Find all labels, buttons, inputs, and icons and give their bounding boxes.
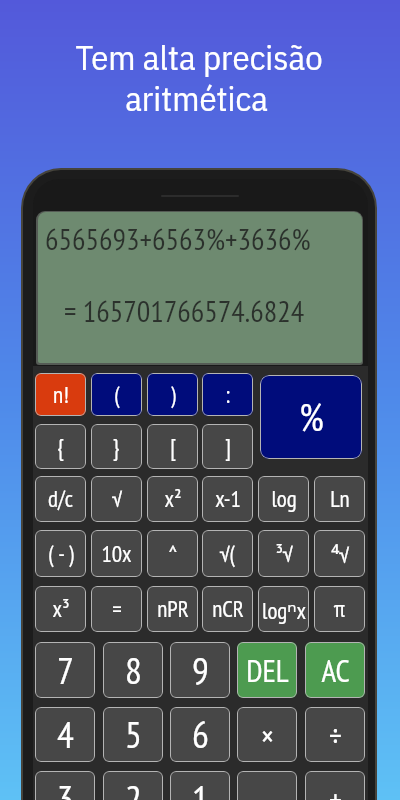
button[interactable]: x-1 (202, 476, 253, 522)
button[interactable]: 7 (35, 642, 95, 698)
staticText: × (261, 715, 274, 755)
button[interactable]: π (314, 586, 365, 632)
button[interactable]: } (91, 424, 142, 469)
staticText: { (57, 432, 64, 462)
button[interactable]: 1 (170, 771, 230, 800)
staticText: 4 (57, 710, 74, 759)
staticText: AC (321, 650, 350, 690)
staticText: logⁿx (262, 594, 306, 625)
button[interactable]: ³√ (258, 530, 309, 577)
button[interactable]: logⁿx (258, 586, 309, 632)
staticText: 9 (192, 646, 209, 695)
staticText: x³ (52, 594, 70, 624)
staticText: ) (170, 380, 176, 410)
button[interactable]: = (91, 586, 142, 632)
button[interactable]: 6 (170, 707, 230, 762)
button[interactable]: 5 (103, 707, 163, 762)
button[interactable]: 4 (35, 707, 95, 762)
staticText: % (299, 392, 324, 442)
staticText: ⁴√ (331, 538, 349, 569)
button[interactable]: nCR (202, 586, 253, 632)
staticText: 1 (192, 774, 209, 800)
staticText: ] (225, 432, 231, 462)
staticText: 5 (125, 710, 142, 759)
staticText: ÷ (329, 715, 342, 755)
button[interactable]: AC (305, 642, 365, 698)
button[interactable]: nPR (147, 586, 198, 632)
button[interactable]: Ln (314, 476, 365, 522)
staticText: ( - ) (48, 539, 74, 569)
staticText: = (112, 594, 122, 624)
button[interactable]: ^ (147, 530, 198, 577)
button[interactable]: 3 (35, 771, 95, 800)
staticText: log (271, 484, 297, 514)
button[interactable]: [ (147, 424, 198, 469)
staticText: x² (164, 484, 182, 514)
button[interactable]: × (237, 707, 297, 762)
button[interactable]: + (305, 771, 365, 800)
button[interactable]: x³ (35, 586, 86, 632)
button[interactable]: d/c (35, 476, 86, 522)
button[interactable]: √( (202, 530, 253, 577)
staticText: ³√ (275, 539, 293, 569)
staticText: n! (53, 380, 69, 410)
staticText: aritmética (125, 76, 268, 121)
staticText: ^ (168, 539, 178, 569)
button[interactable]: 10x (91, 530, 142, 577)
staticText: nCR (212, 594, 244, 624)
button[interactable]: 9 (170, 642, 230, 698)
staticText: 6565693+6563%+3636% (45, 219, 311, 258)
staticText: Tem alta precisão (75, 35, 323, 80)
staticText: 3 (57, 774, 74, 800)
button[interactable]: √ (91, 476, 142, 522)
staticText: DEL (246, 650, 289, 690)
button[interactable]: x² (147, 476, 198, 522)
staticText: 10x (101, 539, 132, 569)
staticText: 8 (125, 646, 142, 695)
staticText: = 165701766574.6824 (64, 291, 305, 330)
button[interactable]: DEL (237, 642, 297, 698)
button[interactable]: ÷ (305, 707, 365, 762)
staticText: + (329, 779, 342, 800)
button[interactable]: ( (91, 373, 142, 416)
staticText: 2 (125, 774, 142, 800)
button[interactable]: n! (35, 373, 86, 416)
staticText: nPR (157, 594, 189, 624)
button[interactable]: ) (147, 373, 198, 416)
button[interactable]: 2 (103, 771, 163, 800)
staticText: : (225, 380, 230, 410)
staticText: } (113, 432, 120, 462)
staticText: √( (220, 539, 235, 569)
staticText: d/c (48, 484, 73, 514)
button[interactable]: % (260, 375, 362, 459)
button[interactable]: ( - ) (35, 530, 86, 577)
staticText: √ (112, 484, 122, 514)
staticText: x-1 (215, 484, 241, 514)
staticText: Ln (330, 484, 350, 514)
button[interactable]: : (202, 373, 253, 416)
button[interactable]: 8 (103, 642, 163, 698)
button[interactable]: ] (202, 424, 253, 469)
button[interactable]: - (237, 771, 297, 800)
staticText: [ (170, 432, 176, 462)
staticText: 7 (57, 646, 74, 695)
staticText: ( (114, 380, 120, 410)
staticText: π (333, 594, 346, 624)
staticText: 6 (192, 710, 209, 759)
button[interactable]: log (258, 476, 309, 522)
button[interactable]: ⁴√ (314, 530, 365, 577)
button[interactable]: { (35, 424, 86, 469)
